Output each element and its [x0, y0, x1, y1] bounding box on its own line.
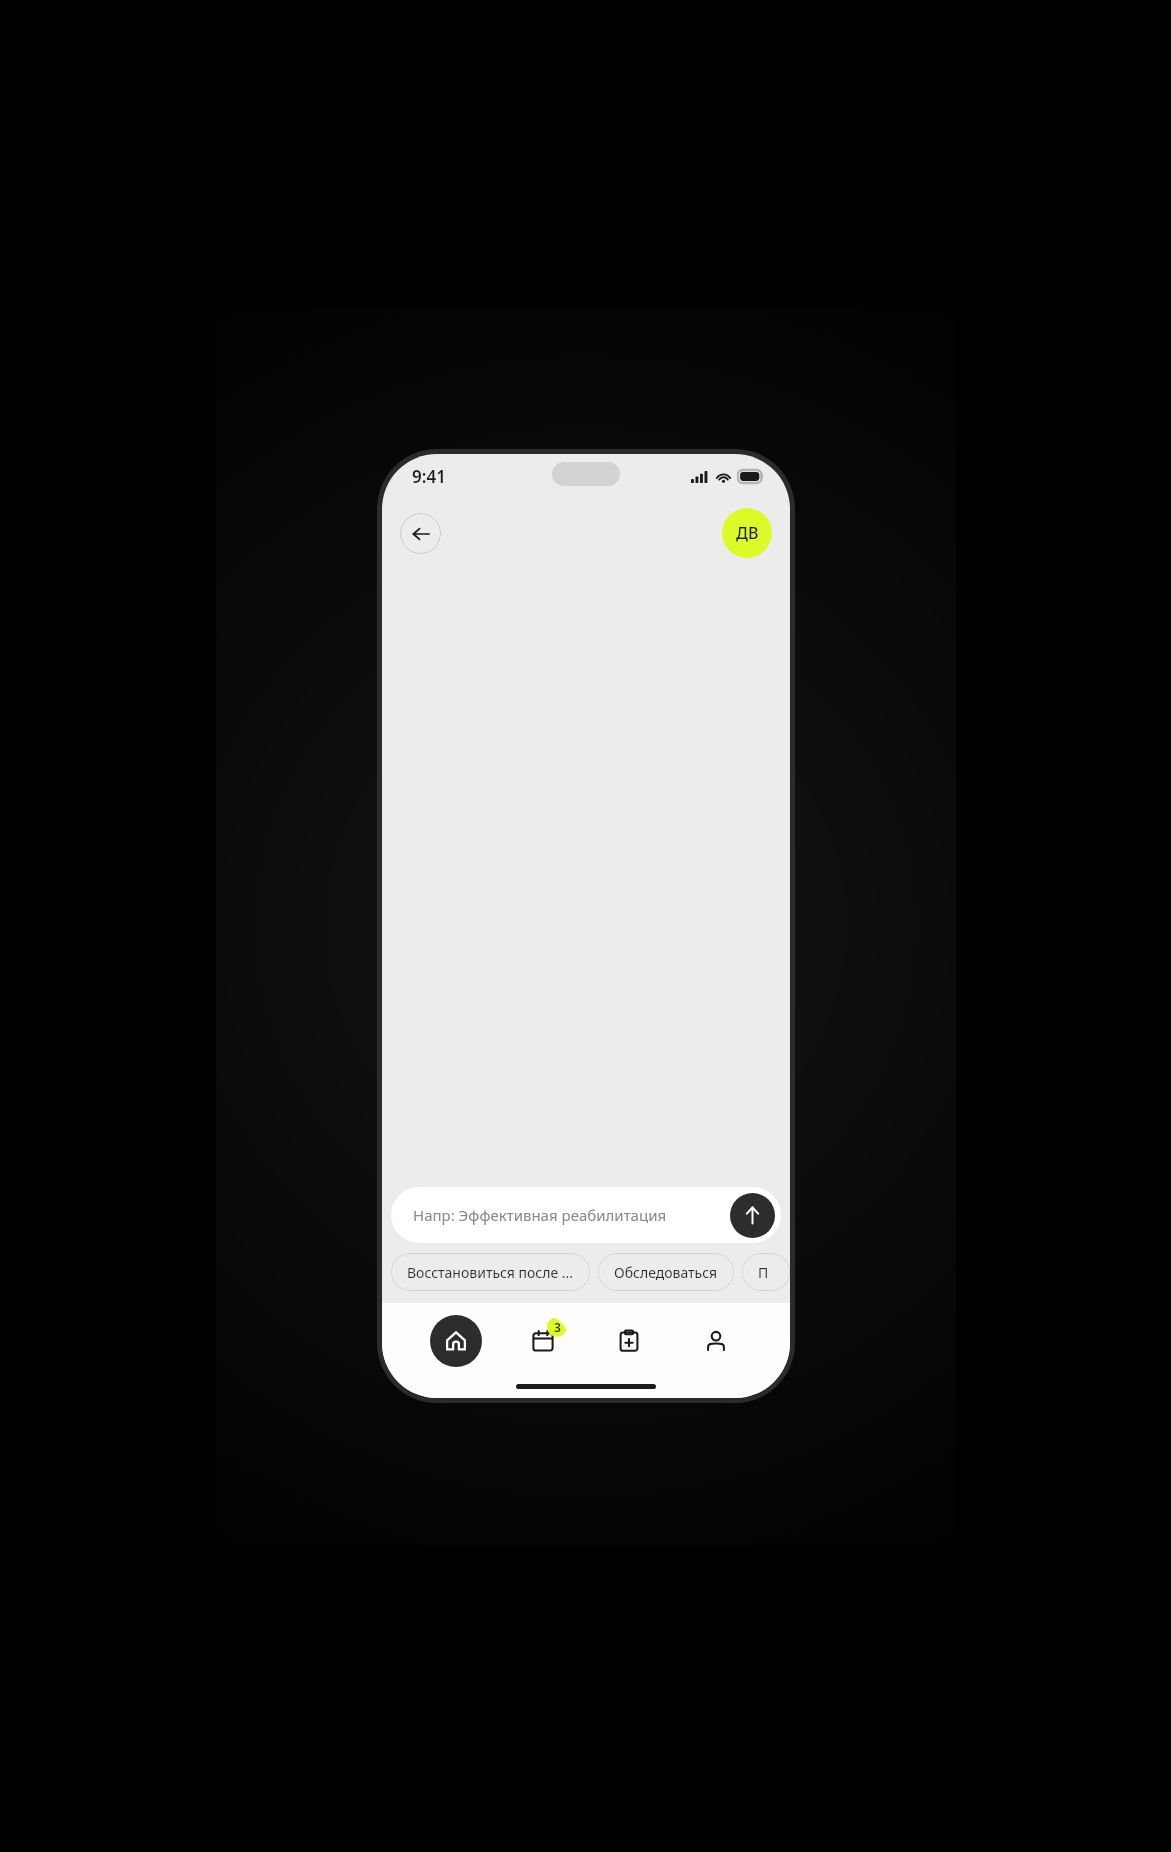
button[interactable]: ДВ	[722, 508, 772, 558]
staticText: Восстановиться после ...	[407, 1263, 574, 1282]
staticText: Обследоваться	[614, 1263, 718, 1282]
button[interactable]: Восстановиться после ...	[391, 1253, 590, 1291]
button[interactable]: Records	[603, 1315, 655, 1367]
staticText: 3	[554, 1319, 561, 1335]
button[interactable]: Home	[430, 1315, 482, 1367]
staticText: Проверить	[758, 1263, 774, 1282]
button[interactable]: Напр: Эффективная реабилитация	[391, 1187, 781, 1243]
button[interactable]: Send	[730, 1193, 775, 1238]
button[interactable]: Profile	[690, 1315, 742, 1367]
button[interactable]: Back	[400, 513, 441, 554]
button[interactable]: Calendar	[517, 1315, 569, 1367]
button[interactable]: Проверить	[742, 1253, 790, 1291]
staticText: Напр: Эффективная реабилитация	[413, 1205, 667, 1225]
staticText: 9:41	[412, 465, 446, 488]
button[interactable]: Обследоваться	[598, 1253, 734, 1291]
staticText: ДВ	[736, 522, 759, 544]
